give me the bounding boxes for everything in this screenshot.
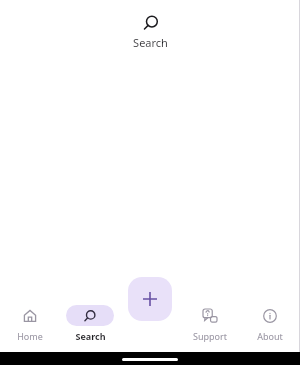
staticText: About [257, 330, 283, 342]
button[interactable]: Search [60, 303, 120, 344]
button[interactable]: About [240, 303, 300, 344]
staticText: Home [17, 330, 43, 342]
staticText: Support [193, 330, 227, 342]
staticText: Search [133, 35, 168, 50]
staticText: Search [75, 330, 106, 342]
button[interactable]: Add [128, 277, 172, 321]
button[interactable]: Support [180, 303, 240, 344]
button[interactable]: Home [0, 303, 60, 344]
